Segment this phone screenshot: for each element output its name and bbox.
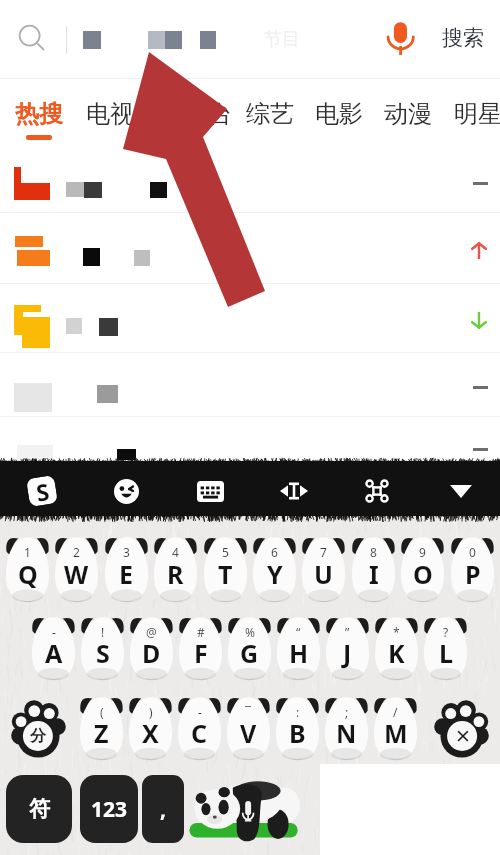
- button[interactable]: Segment: [7, 696, 67, 760]
- staticText: ;: [345, 704, 349, 720]
- staticText: R: [167, 557, 184, 591]
- button[interactable]: 电影: [315, 99, 363, 145]
- button[interactable]: !: [81, 616, 124, 679]
- staticText: /: [393, 704, 398, 720]
- staticText: 分: [30, 726, 46, 746]
- staticText: ?: [443, 624, 449, 640]
- staticText: 动漫: [384, 99, 432, 129]
- button[interactable]: -: [178, 696, 221, 759]
- button[interactable]: /: [374, 696, 417, 759]
- button[interactable]: Emoji: [105, 470, 147, 512]
- button[interactable]: 7: [302, 536, 345, 601]
- button[interactable]: @: [130, 616, 173, 679]
- staticText: W: [64, 557, 89, 591]
- button[interactable]: ): [129, 696, 172, 759]
- staticText: -: [52, 624, 56, 640]
- button[interactable]: More tools: [356, 470, 398, 512]
- button[interactable]: 动漫: [384, 99, 432, 145]
- button[interactable]: 1: [6, 536, 49, 601]
- button[interactable]: 综艺: [246, 99, 294, 145]
- staticText: ): [149, 704, 153, 720]
- button[interactable]: Keyboard layout: [189, 470, 231, 512]
- button[interactable]: Sogou input method: [21, 470, 63, 512]
- button[interactable]: #: [179, 616, 222, 679]
- button[interactable]: Hide keyboard: [440, 470, 482, 512]
- staticText: F: [194, 636, 208, 670]
- staticText: 123: [91, 795, 128, 824]
- staticText: C: [191, 716, 208, 750]
- button[interactable]: [0, 417, 500, 477]
- staticText: 9: [419, 544, 426, 560]
- staticText: %: [245, 624, 255, 640]
- button[interactable]: *: [375, 616, 418, 679]
- staticText: 6: [271, 544, 278, 560]
- staticText: Y: [267, 557, 283, 591]
- staticText: 热搜: [15, 99, 63, 129]
- button[interactable]: %: [228, 616, 271, 679]
- button[interactable]: Space: [186, 780, 300, 844]
- button[interactable]: [0, 213, 500, 284]
- button[interactable]: 4: [154, 536, 197, 601]
- button[interactable]: ,: [142, 775, 184, 843]
- staticText: ,: [160, 795, 166, 824]
- button[interactable]: “: [277, 616, 320, 679]
- staticText: G: [240, 636, 259, 670]
- button[interactable]: 搜索: [442, 25, 484, 51]
- staticText: D: [142, 636, 161, 670]
- staticText: *: [393, 624, 400, 640]
- staticText: P: [465, 557, 481, 591]
- staticText: B: [289, 716, 306, 750]
- staticText: 电影: [315, 99, 363, 129]
- button[interactable]: [0, 353, 500, 417]
- staticText: X: [142, 716, 159, 750]
- staticText: 4: [172, 544, 179, 560]
- staticText: (: [100, 704, 104, 720]
- staticText: H: [289, 636, 309, 670]
- button[interactable]: ;: [325, 696, 368, 759]
- button[interactable]: 符: [6, 775, 72, 843]
- button[interactable]: ¯: [227, 696, 270, 759]
- button[interactable]: Search: [13, 20, 47, 54]
- staticText: :: [296, 704, 300, 720]
- button[interactable]: Move cursor: [273, 470, 315, 512]
- staticText: J: [343, 636, 352, 670]
- button[interactable]: 8: [352, 536, 395, 601]
- button[interactable]: (: [80, 696, 123, 759]
- button[interactable]: 5: [204, 536, 247, 601]
- button[interactable]: 0: [451, 536, 494, 601]
- button[interactable]: 电视台: [160, 99, 232, 145]
- button[interactable]: 热搜: [15, 99, 63, 145]
- staticText: 8: [370, 544, 377, 560]
- button[interactable]: [0, 150, 500, 213]
- staticText: V: [240, 716, 257, 750]
- staticText: “: [296, 624, 301, 640]
- button[interactable]: ?: [424, 616, 467, 679]
- staticText: 电视台: [160, 99, 232, 129]
- staticText: 5: [222, 544, 229, 560]
- staticText: -: [198, 704, 202, 720]
- button[interactable]: 3: [105, 536, 148, 601]
- button[interactable]: ”: [326, 616, 369, 679]
- button[interactable]: :: [276, 696, 319, 759]
- staticText: @: [146, 624, 157, 640]
- button[interactable]: Voice search: [386, 18, 416, 60]
- button[interactable]: Backspace: [433, 696, 493, 760]
- staticText: ¯: [245, 704, 252, 720]
- staticText: 0: [469, 544, 476, 560]
- staticText: 2: [73, 544, 80, 560]
- staticText: A: [45, 636, 63, 670]
- staticText: N: [336, 716, 357, 750]
- staticText: #: [197, 624, 205, 640]
- button[interactable]: 6: [253, 536, 296, 601]
- button[interactable]: 明星: [454, 99, 500, 145]
- button[interactable]: 2: [55, 536, 98, 601]
- button[interactable]: 123: [80, 775, 138, 843]
- staticText: S: [34, 476, 51, 505]
- button[interactable]: [0, 284, 500, 353]
- staticText: 综艺: [246, 99, 294, 129]
- button[interactable]: -: [32, 616, 75, 679]
- button[interactable]: 9: [401, 536, 444, 601]
- staticText: 7: [320, 544, 327, 560]
- button[interactable]: 电视剧: [86, 99, 158, 145]
- staticText: L: [439, 636, 453, 670]
